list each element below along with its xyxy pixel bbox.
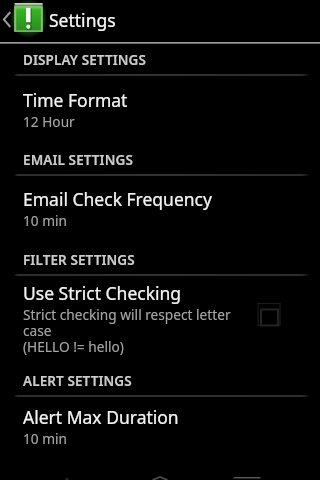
staticText: FILTER SETTINGS xyxy=(23,251,135,269)
staticText: Time Format xyxy=(23,88,128,112)
button[interactable]: Recent apps xyxy=(224,466,270,480)
staticText: Settings xyxy=(49,8,116,32)
staticText: Strict checking will respect letter case… xyxy=(23,305,231,356)
staticText: DISPLAY SETTINGS xyxy=(23,51,147,69)
button[interactable]: Navigate up xyxy=(0,0,45,42)
button[interactable]: Alert Max Duration xyxy=(0,405,320,448)
staticText: Email Check Frequency xyxy=(23,187,212,211)
staticText: ALERT SETTINGS xyxy=(23,372,132,390)
staticText: 10 min xyxy=(23,429,68,448)
button[interactable]: Email Check Frequency xyxy=(0,187,320,230)
staticText: 10 min xyxy=(23,211,68,230)
button[interactable]: Use Strict Checking xyxy=(0,281,320,356)
button[interactable]: Use Strict Checking checkbox xyxy=(256,303,292,347)
button[interactable]: Time Format xyxy=(0,88,320,131)
staticText: Use Strict Checking xyxy=(23,281,182,305)
staticText: EMAIL SETTINGS xyxy=(23,151,133,169)
button[interactable]: Home xyxy=(137,466,183,480)
staticText: 12 Hour xyxy=(23,112,75,131)
staticText: Alert Max Duration xyxy=(23,405,179,429)
button[interactable]: Back xyxy=(44,466,90,480)
